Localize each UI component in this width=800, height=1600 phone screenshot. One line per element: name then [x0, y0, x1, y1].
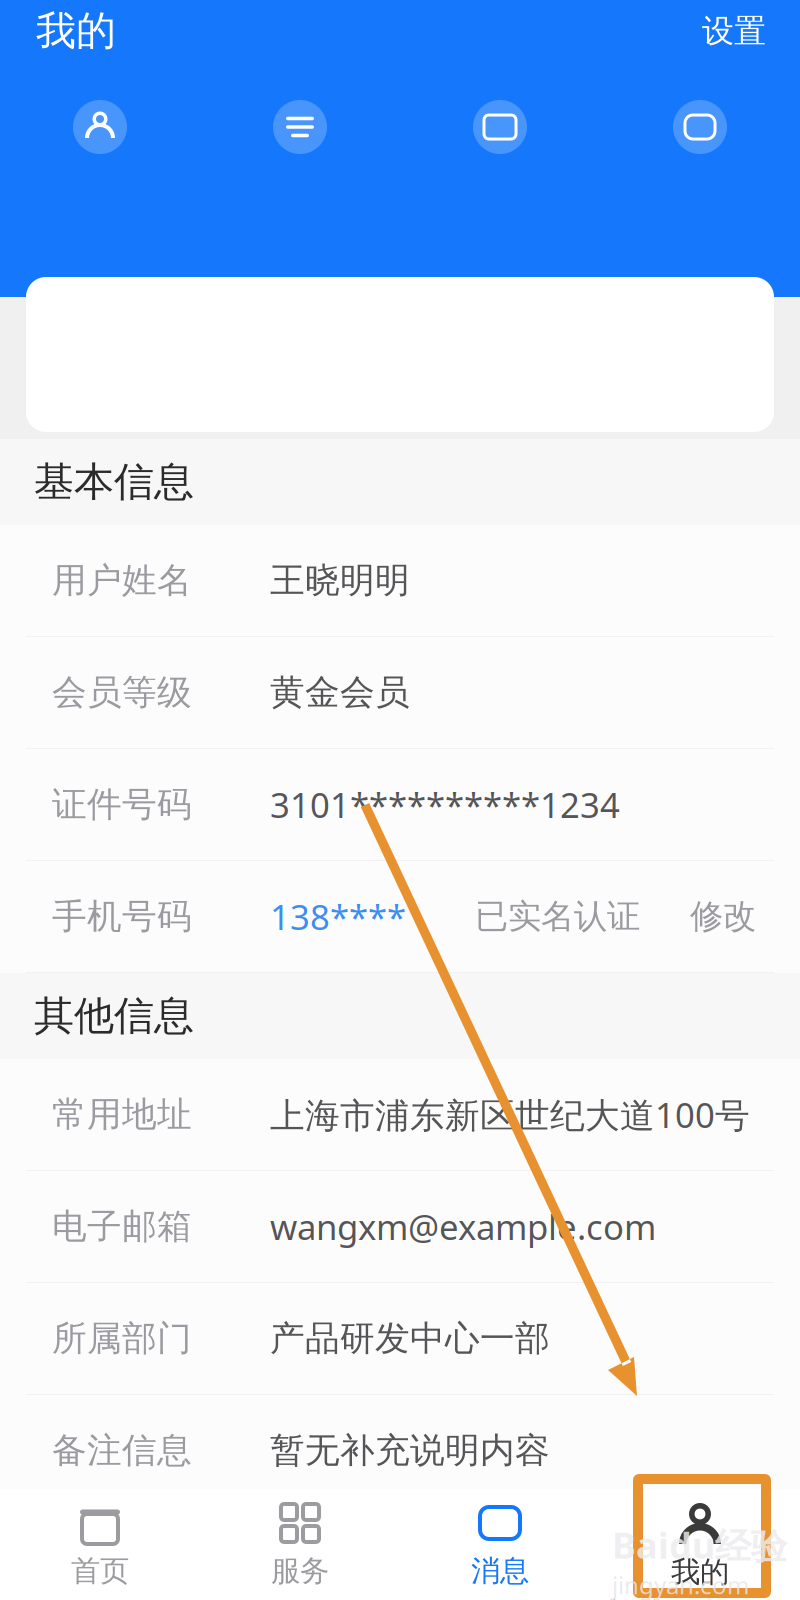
staticText: 3101**********1234 [270, 781, 620, 827]
staticText: 会员等级 [52, 671, 192, 714]
staticText: 用户姓名 [52, 559, 192, 602]
staticText: 设置 [702, 11, 766, 51]
staticText: 我的 [36, 6, 116, 55]
staticText: 其他信息 [34, 991, 194, 1040]
button[interactable]: 服务 [200, 1489, 400, 1599]
staticText: 电子邮箱 [52, 1205, 192, 1248]
staticText: 手机号码 [52, 895, 192, 938]
staticText: 服务 [271, 1553, 329, 1589]
button[interactable]: 手机号码 [0, 861, 800, 973]
staticText: 暂无补充说明内容 [270, 1429, 550, 1472]
staticText: 已实名认证 [475, 896, 640, 937]
staticText: 基本信息 [34, 457, 194, 506]
staticText: wangxm@example.com [270, 1203, 656, 1249]
button[interactable]: 会员等级 [0, 637, 800, 749]
staticText: 消息 [471, 1553, 529, 1589]
button[interactable]: 证件号码 [0, 749, 800, 861]
staticText: 王晓明明 [270, 559, 410, 602]
button[interactable]: 电子邮箱 [0, 1171, 800, 1283]
button[interactable]: 我的订单 [200, 82, 400, 172]
button[interactable]: 在线客服 [600, 82, 800, 172]
button[interactable]: 消息 [400, 1489, 600, 1599]
button[interactable]: 首页 [0, 1489, 200, 1599]
staticText: 黄金会员 [270, 671, 410, 714]
staticText: 所属部门 [52, 1317, 192, 1360]
button[interactable]: 常用地址 [0, 1059, 800, 1171]
button[interactable]: 优惠卡券 [400, 82, 600, 172]
staticText: 首页 [71, 1553, 129, 1589]
staticText: 上海市浦东新区世纪大道100号 [270, 1091, 750, 1137]
staticText: 产品研发中心一部 [270, 1317, 550, 1360]
staticText: Baidu经验 [612, 1521, 787, 1569]
staticText: 我的 [671, 1554, 729, 1590]
staticText: jingyan.com [612, 1569, 749, 1600]
staticText: 修改 [690, 896, 756, 937]
button[interactable]: 我的 [0, 0, 116, 63]
button[interactable]: 备注信息 [0, 1395, 800, 1507]
button[interactable]: 我的 [600, 1489, 800, 1599]
button[interactable]: 用户姓名 [0, 525, 800, 637]
button[interactable]: 所属部门 [0, 1283, 800, 1395]
button[interactable]: 账户管理 [0, 82, 200, 172]
button[interactable]: 设置 [702, 0, 800, 63]
staticText: 138**** [270, 893, 406, 939]
staticText: 备注信息 [52, 1429, 192, 1472]
staticText: 常用地址 [52, 1093, 192, 1136]
staticText: 证件号码 [52, 783, 192, 826]
